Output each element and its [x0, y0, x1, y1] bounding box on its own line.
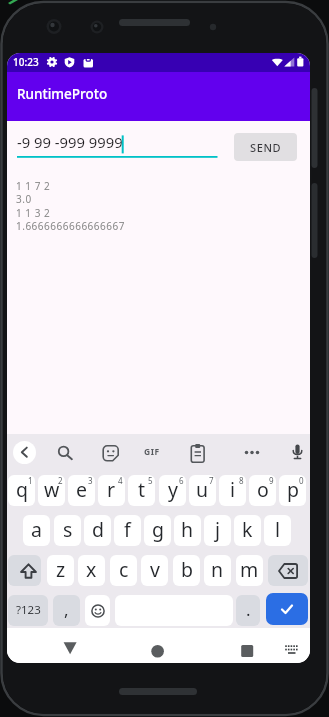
staticText: s: [63, 516, 73, 543]
staticText: 4: [118, 475, 123, 486]
button[interactable]: p: [279, 475, 306, 506]
button[interactable]: [140, 440, 166, 464]
button[interactable]: m: [236, 555, 263, 586]
button[interactable]: [53, 636, 87, 662]
button[interactable]: s: [54, 515, 81, 546]
staticText: 7: [209, 475, 214, 486]
button[interactable]: .: [236, 595, 260, 626]
button[interactable]: n: [204, 555, 231, 586]
button[interactable]: e: [68, 475, 95, 506]
staticText: n: [211, 556, 224, 583]
staticText: f: [124, 516, 131, 543]
staticText: b: [181, 556, 193, 583]
staticText: e: [76, 476, 87, 503]
staticText: w: [44, 476, 60, 503]
staticText: o: [257, 476, 269, 503]
button[interactable]: a: [23, 515, 50, 546]
staticText: u: [196, 476, 209, 503]
button[interactable]: [268, 555, 308, 586]
staticText: m: [240, 556, 259, 583]
button[interactable]: o: [249, 475, 276, 506]
button[interactable]: [229, 636, 263, 662]
staticText: 6: [179, 475, 184, 486]
button[interactable]: [8, 555, 41, 586]
button[interactable]: l: [264, 515, 291, 546]
staticText: y: [168, 476, 178, 503]
button[interactable]: u: [189, 475, 216, 506]
button[interactable]: f: [114, 515, 141, 546]
staticText: RuntimeProto: [17, 85, 108, 103]
staticText: 3.0: [16, 192, 32, 206]
staticText: p: [287, 476, 299, 503]
button[interactable]: j: [204, 515, 231, 546]
button[interactable]: [52, 440, 76, 464]
staticText: 1 1 7 2: [16, 179, 51, 193]
staticText: SEND: [250, 140, 282, 155]
staticText: t: [138, 476, 146, 503]
button[interactable]: k: [234, 515, 261, 546]
staticText: 5: [148, 475, 153, 486]
staticText: 8: [239, 475, 244, 486]
button[interactable]: [13, 441, 36, 464]
button[interactable]: c: [110, 555, 137, 586]
button[interactable]: d: [84, 515, 111, 546]
button[interactable]: SEND: [234, 133, 297, 161]
staticText: h: [181, 516, 194, 543]
staticText: z: [56, 556, 66, 583]
button[interactable]: w: [38, 475, 65, 506]
staticText: ,: [64, 598, 69, 621]
button[interactable]: z: [47, 555, 74, 586]
button[interactable]: i: [219, 475, 246, 506]
staticText: ?123: [16, 602, 41, 618]
staticText: j: [215, 516, 221, 543]
staticText: x: [86, 556, 97, 583]
button[interactable]: y: [159, 475, 186, 506]
staticText: l: [275, 516, 281, 543]
button[interactable]: ,: [53, 595, 80, 626]
staticText: c: [119, 556, 129, 583]
button[interactable]: t: [128, 475, 155, 506]
staticText: 1 1 3 2: [16, 206, 51, 220]
button[interactable]: [85, 595, 110, 626]
staticText: a: [31, 516, 42, 543]
staticText: 3: [88, 475, 93, 486]
button[interactable]: x: [78, 555, 105, 586]
button[interactable]: q: [8, 475, 35, 506]
button[interactable]: g: [144, 515, 171, 546]
staticText: v: [150, 556, 160, 583]
button[interactable]: [240, 440, 264, 464]
staticText: .: [246, 598, 251, 621]
button[interactable]: b: [173, 555, 200, 586]
staticText: 10:23: [13, 55, 39, 69]
staticText: d: [92, 516, 104, 543]
staticText: GIF: [144, 446, 160, 458]
button[interactable]: [266, 593, 308, 625]
button[interactable]: [141, 636, 175, 662]
staticText: 9: [269, 475, 274, 486]
staticText: 2: [58, 475, 63, 486]
button[interactable]: [99, 440, 123, 464]
staticText: r: [107, 476, 116, 503]
button[interactable]: v: [141, 555, 168, 586]
button[interactable]: [285, 440, 309, 464]
button[interactable]: [17, 129, 225, 159]
button[interactable]: h: [174, 515, 201, 546]
staticText: 0: [299, 475, 304, 486]
button[interactable]: r: [98, 475, 125, 506]
staticText: k: [242, 516, 253, 543]
button[interactable]: [185, 440, 209, 464]
button[interactable]: [279, 636, 307, 662]
staticText: q: [16, 476, 28, 503]
staticText: -9 99 -999 9999: [17, 132, 123, 152]
staticText: 1: [28, 475, 33, 486]
staticText: 1.6666666666666667: [16, 219, 125, 233]
staticText: i: [230, 476, 236, 503]
staticText: g: [152, 516, 164, 543]
button[interactable]: ?123: [8, 595, 48, 626]
